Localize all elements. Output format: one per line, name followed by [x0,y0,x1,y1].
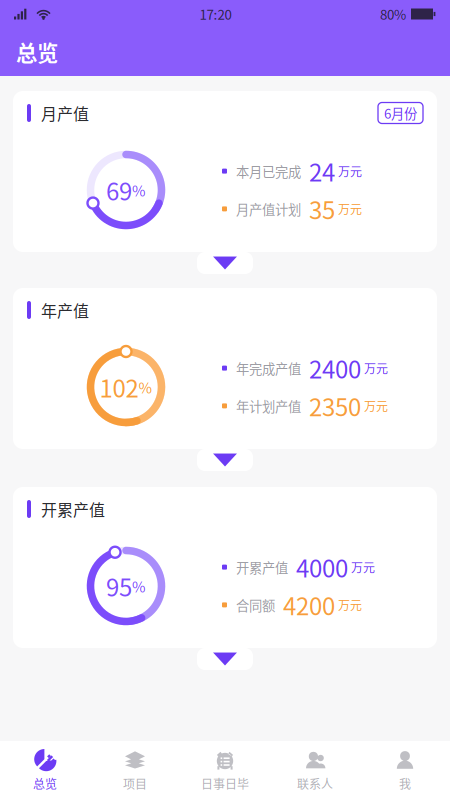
staticText: 联系人 [297,775,333,792]
staticText: 月产值计划 [236,199,301,218]
staticText: % [138,376,152,398]
staticText: 102 [99,370,138,404]
staticText: 日事日毕 [201,775,249,792]
button[interactable]: 展开 [197,648,253,670]
staticText: 24 [309,154,335,188]
staticText: 合同额 [236,595,275,614]
staticText: 年产值 [41,298,89,322]
staticText: 万元 [364,359,388,377]
button[interactable]: 我 [360,741,450,800]
staticText: 年计划产值 [236,396,301,415]
staticText: 开累产值 [236,557,288,577]
staticText: 总览 [16,37,58,67]
staticText: 总览 [33,775,57,792]
button[interactable]: 联系人 [270,741,360,800]
staticText: 年完成产值 [236,358,301,378]
staticText: 万元 [364,397,388,415]
staticText: 69 [106,173,132,207]
staticText: 35 [309,191,335,226]
staticText: 4000 [296,550,348,584]
staticText: 本月已完成 [236,161,301,181]
staticText: 95 [106,569,132,603]
button[interactable]: 项目 [90,741,180,800]
staticText: 2400 [309,351,361,385]
staticText: 万元 [351,558,375,576]
staticText: 6月份 [384,103,417,123]
staticText: % [132,179,146,201]
staticText: 项目 [123,775,147,792]
staticText: 开累产值 [41,497,105,521]
staticText: 万元 [338,162,362,180]
staticText: 2350 [309,388,361,423]
staticText: % [132,575,146,597]
button[interactable]: 展开 [197,449,253,471]
staticText: 80% [380,4,406,24]
staticText: 万元 [338,596,362,614]
button[interactable]: 展开 [197,252,253,274]
button[interactable]: 总览 [0,741,90,800]
staticText: 17:20 [199,4,231,24]
button[interactable]: 日事日毕 [180,741,270,800]
button[interactable]: 6月份 [378,102,423,123]
staticText: 万元 [338,200,362,218]
staticText: 4200 [283,587,335,622]
staticText: 月产值 [41,101,89,125]
staticText: 我 [399,775,411,792]
